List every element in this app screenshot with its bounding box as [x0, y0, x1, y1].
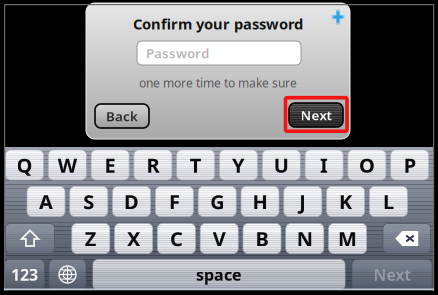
button[interactable]: space [93, 259, 345, 289]
button[interactable]: W [48, 150, 86, 180]
staticText: E [105, 152, 116, 178]
staticText: Z [85, 225, 97, 252]
staticText: O [359, 152, 375, 178]
button[interactable]: J [284, 186, 322, 216]
button[interactable]: Next [289, 103, 343, 127]
staticText: V [213, 225, 226, 252]
button[interactable]: P [391, 150, 429, 180]
staticText: Password [146, 44, 209, 62]
staticText: P [404, 152, 416, 178]
staticText: J [299, 188, 306, 215]
button[interactable]: E [91, 150, 129, 180]
button[interactable]: C [157, 223, 195, 253]
staticText: Confirm your password [133, 14, 303, 33]
staticText: F [169, 188, 180, 215]
button[interactable]: I [305, 150, 343, 180]
button[interactable]: F [155, 186, 193, 216]
staticText: R [146, 152, 159, 178]
button[interactable]: 123 [4, 259, 44, 289]
button[interactable]: Next keyboard [49, 259, 86, 289]
button[interactable]: Shift [5, 223, 54, 253]
button[interactable]: Next [352, 259, 432, 289]
staticText: Next [373, 264, 410, 285]
staticText: U [274, 152, 289, 178]
staticText: S [83, 188, 94, 215]
button[interactable]: S [70, 186, 108, 216]
button[interactable]: Q [5, 150, 43, 180]
staticText: C [170, 225, 183, 252]
staticText: W [58, 152, 77, 178]
staticText: L [383, 188, 394, 215]
button[interactable]: L [369, 186, 407, 216]
button[interactable]: D [113, 186, 151, 216]
staticText: B [255, 225, 268, 252]
button[interactable]: R [134, 150, 172, 180]
staticText: Next [300, 106, 331, 124]
button[interactable]: Delete [383, 223, 430, 253]
button[interactable]: A [27, 186, 65, 216]
staticText: X [127, 225, 140, 252]
button[interactable]: G [198, 186, 236, 216]
staticText: 123 [11, 264, 38, 285]
staticText: G [210, 188, 224, 215]
button[interactable]: H [241, 186, 279, 216]
staticText: D [124, 188, 139, 215]
button[interactable]: N [286, 223, 324, 253]
staticText: H [252, 188, 267, 215]
staticText: space [196, 264, 242, 285]
button[interactable]: Back [95, 104, 149, 128]
staticText: Q [16, 152, 32, 178]
staticText: one more time to make sure [139, 75, 297, 91]
staticText: A [39, 188, 53, 215]
button[interactable]: B [243, 223, 281, 253]
staticText: K [339, 188, 352, 215]
staticText: N [297, 225, 313, 252]
button[interactable]: M [329, 223, 367, 253]
button[interactable]: X [115, 223, 153, 253]
button[interactable]: T [177, 150, 215, 180]
staticText: Y [232, 152, 245, 178]
staticText: M [338, 225, 357, 252]
button[interactable]: V [200, 223, 238, 253]
button[interactable]: O [348, 150, 386, 180]
staticText: I [320, 152, 328, 178]
staticText: T [190, 152, 202, 178]
staticText: Back [106, 107, 138, 125]
button[interactable]: Z [72, 223, 110, 253]
button[interactable]: U [262, 150, 300, 180]
button[interactable]: K [327, 186, 365, 216]
button[interactable]: Y [219, 150, 257, 180]
